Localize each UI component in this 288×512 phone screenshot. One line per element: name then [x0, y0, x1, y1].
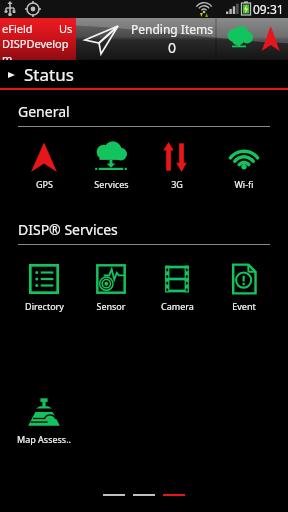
- button[interactable]: Directory: [12, 259, 76, 314]
- button[interactable]: Map Assess..: [12, 392, 76, 447]
- staticText: Map Assess..: [17, 433, 71, 445]
- staticText: DISPDevelopm: [2, 36, 76, 60]
- button[interactable]: Camera: [145, 259, 209, 314]
- staticText: General: [18, 102, 70, 121]
- staticText: Us: [59, 21, 73, 36]
- staticText: Event: [232, 300, 256, 312]
- button[interactable]: Wi-fi: [212, 137, 276, 192]
- button[interactable]: Map and navigation: [216, 18, 288, 60]
- staticText: Directory: [25, 300, 64, 312]
- staticText: Camera: [161, 300, 194, 312]
- staticText: 3G: [171, 178, 183, 190]
- staticText: DISP® Services: [18, 220, 118, 239]
- button[interactable]: Sensor: [79, 259, 143, 314]
- staticText: Services: [94, 178, 129, 190]
- staticText: Sensor: [96, 300, 126, 312]
- staticText: 09:31: [253, 1, 284, 17]
- staticText: eField: [2, 21, 33, 36]
- staticText: Wi-fi: [234, 178, 254, 190]
- staticText: GPS: [36, 178, 53, 190]
- button[interactable]: eField: [0, 18, 76, 60]
- button[interactable]: Event: [212, 259, 276, 314]
- button[interactable]: Status: [0, 60, 288, 88]
- staticText: 0: [168, 38, 177, 57]
- staticText: Pending Items: [131, 21, 213, 37]
- button[interactable]: GPS: [12, 137, 76, 192]
- button[interactable]: Services: [79, 137, 143, 192]
- button[interactable]: Pending Items: [76, 18, 216, 60]
- staticText: Status: [24, 63, 74, 86]
- button[interactable]: 3G: [145, 137, 209, 192]
